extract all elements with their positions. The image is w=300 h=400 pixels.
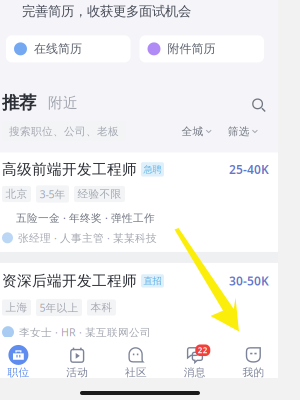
staticText: 五险一金 · 年终奖 · 弹性工作	[16, 211, 155, 225]
staticText: 张经理 · 人事主管 · 某某科技	[18, 231, 157, 245]
staticText: 活动	[66, 366, 88, 379]
staticText: 筛选	[228, 125, 250, 138]
button[interactable]: 高级产品经理	[0, 359, 278, 400]
staticText: 北京	[5, 187, 27, 200]
staticText: 上海	[5, 301, 27, 314]
button[interactable]: 职位	[0, 346, 48, 379]
staticText: 20-35K	[229, 369, 269, 385]
button[interactable]: 搜索职位、公司、老板	[2, 121, 126, 141]
staticText: 附件简历	[167, 41, 215, 56]
button[interactable]: 社区	[107, 346, 165, 379]
button[interactable]: 在线简历	[6, 35, 130, 62]
staticText: 社区	[125, 366, 147, 379]
button[interactable]: 我的	[224, 346, 283, 379]
staticText: 30-50K	[229, 273, 269, 289]
staticText: 我的	[243, 366, 265, 379]
staticText: 22	[198, 345, 208, 355]
button[interactable]: 筛选	[228, 125, 258, 138]
staticText: 25-40K	[229, 161, 269, 177]
staticText: 职位	[7, 366, 29, 379]
button[interactable]: 附件简历	[139, 35, 264, 62]
staticText: 高级产品经理	[2, 368, 92, 386]
button[interactable]: 22	[165, 346, 224, 379]
staticText: 消息	[184, 366, 206, 379]
staticText: 5年以上	[39, 300, 78, 315]
button[interactable]: 资深后端开发工程师	[0, 263, 278, 348]
staticText: 推荐	[2, 92, 36, 113]
staticText: 高级前端开发工程师	[2, 160, 137, 178]
button[interactable]: 推荐	[2, 92, 36, 113]
staticText: 3-5年	[39, 187, 65, 201]
staticText: 本科	[90, 301, 112, 314]
staticText: 经验不限	[77, 187, 121, 200]
button[interactable]: 高级前端开发工程师	[0, 152, 278, 252]
staticText: 搜索职位、公司、老板	[9, 125, 119, 138]
staticText: 完善简历，收获更多面试机会	[22, 3, 191, 19]
staticText: 急聘	[143, 164, 161, 175]
staticText: 直招	[143, 275, 161, 287]
button[interactable]: 搜索	[252, 98, 266, 113]
button[interactable]: 活动	[48, 346, 107, 379]
staticText: 李女士 · HR · 某互联网公司	[19, 325, 151, 339]
staticText: 附近	[48, 94, 78, 112]
staticText: 资深后端开发工程师	[2, 272, 137, 290]
staticText: 全城	[182, 125, 204, 138]
staticText: 在线简历	[34, 41, 82, 56]
button[interactable]: 全城	[182, 125, 212, 138]
button[interactable]: 附近	[48, 94, 78, 113]
